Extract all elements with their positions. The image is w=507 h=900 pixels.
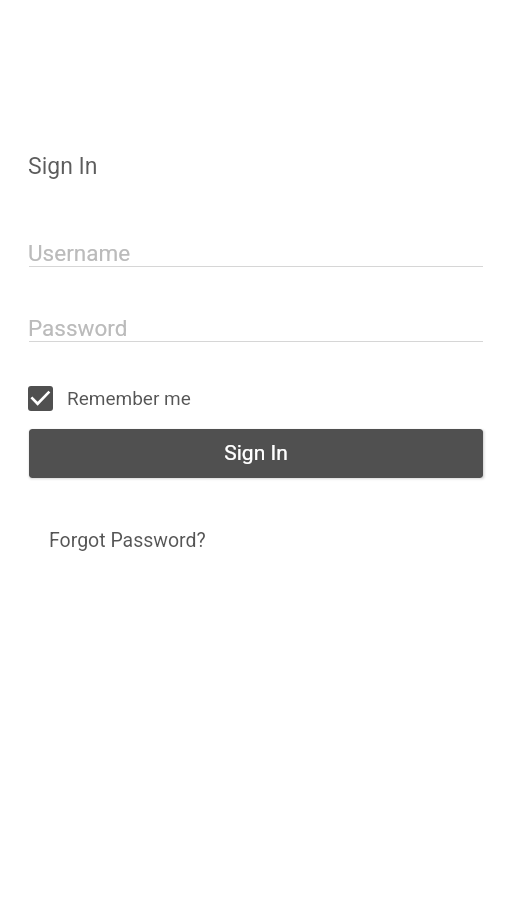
button[interactable] — [29, 228, 483, 267]
staticText: Password — [28, 315, 128, 341]
button[interactable] — [29, 303, 483, 342]
button[interactable]: Sign In — [29, 429, 483, 478]
staticText: Forgot Password? — [49, 529, 206, 552]
staticText: Remember me — [67, 387, 191, 409]
staticText: Sign In — [224, 441, 288, 466]
button[interactable]: Remember me, checked — [28, 386, 191, 411]
staticText: Username — [28, 240, 131, 266]
other: Remember me, checked — [28, 386, 53, 411]
button[interactable]: Forgot Password? — [49, 529, 206, 552]
staticText: Sign In — [28, 153, 98, 180]
